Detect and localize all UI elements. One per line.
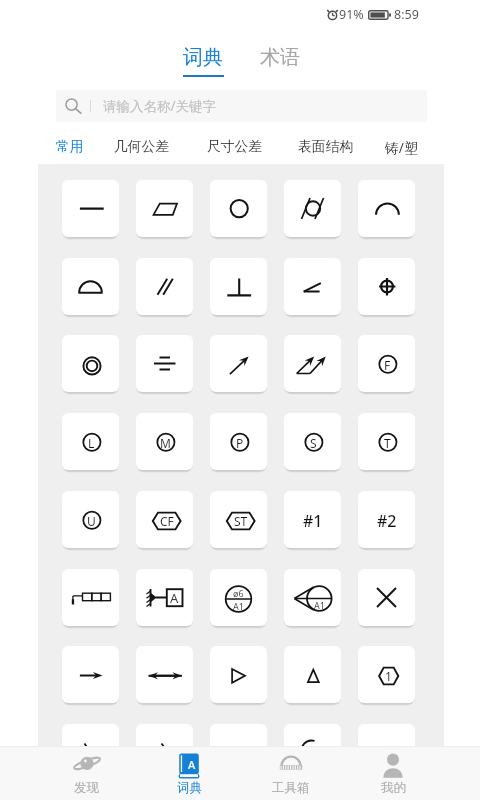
button[interactable]: Symbol 38 — [210, 724, 267, 781]
staticText: 术语 — [260, 45, 300, 70]
staticText: M — [160, 435, 171, 451]
staticText: CF — [160, 513, 174, 529]
button[interactable]: Cylindricity — [284, 180, 341, 237]
button[interactable]: Symmetry — [136, 335, 193, 392]
staticText: 请输入名称/关键字 — [103, 97, 217, 115]
staticText: 91% — [339, 6, 364, 23]
button[interactable]: Circularity — [210, 180, 267, 237]
button[interactable]: Symbol 36 — [62, 724, 119, 781]
staticText: A — [170, 589, 179, 607]
staticText: 1 — [385, 668, 392, 684]
staticText: T — [384, 435, 391, 451]
staticText: A1 — [233, 600, 244, 612]
staticText: P — [236, 435, 244, 451]
button[interactable]: Datum target point — [284, 569, 341, 626]
button[interactable]: Perpendicularity — [210, 258, 267, 315]
staticText: 我的 — [381, 780, 406, 796]
staticText: U — [87, 513, 96, 529]
button[interactable]: 词典 — [173, 42, 233, 80]
button[interactable]: Regardless of feature size — [284, 413, 341, 470]
staticText: S — [310, 435, 317, 451]
button[interactable]: Unequally disposed — [62, 491, 119, 548]
button[interactable]: Position — [358, 258, 415, 315]
staticText: L — [88, 435, 95, 451]
staticText: 词典 — [177, 780, 202, 796]
button[interactable]: Statistical tolerance — [210, 491, 267, 548]
staticText: 常用 — [56, 138, 84, 155]
button[interactable]: 工具箱 — [240, 747, 342, 800]
button[interactable]: 几何公差 — [109, 133, 175, 160]
staticText: #2 — [377, 510, 397, 532]
button[interactable]: Datum target one — [284, 491, 341, 548]
button[interactable]: 请输入名称/关键字 — [56, 90, 427, 122]
button[interactable]: Common zone — [136, 491, 193, 548]
staticText: #1 — [303, 510, 323, 532]
staticText: 尺寸公差 — [207, 138, 263, 155]
staticText: F — [384, 357, 391, 373]
button[interactable]: Number one — [358, 646, 415, 703]
staticText: 表面结构 — [298, 138, 354, 155]
button[interactable]: Direction arrow — [62, 646, 119, 703]
button[interactable]: Maximum material condition — [136, 413, 193, 470]
button[interactable]: Symbol 37 — [136, 724, 193, 781]
button[interactable]: Surface profile — [62, 258, 119, 315]
button[interactable]: Open arrow — [210, 646, 267, 703]
button[interactable]: Flatness — [136, 180, 193, 237]
button[interactable]: Triangle — [284, 646, 341, 703]
button[interactable]: Symbol 39 — [284, 724, 341, 781]
button[interactable]: Least material condition — [62, 413, 119, 470]
button[interactable]: Concentricity — [62, 335, 119, 392]
button[interactable]: Projected tolerance zone — [210, 413, 267, 470]
button[interactable]: 尺寸公差 — [202, 133, 268, 160]
button[interactable]: Angularity — [284, 258, 341, 315]
button[interactable]: Straightness — [62, 180, 119, 237]
button[interactable]: Parallelism — [136, 258, 193, 315]
button[interactable]: Datum target two — [358, 491, 415, 548]
staticText: 发现 — [74, 780, 99, 796]
button[interactable]: Datum feature A — [136, 569, 193, 626]
button[interactable]: Circular runout — [210, 335, 267, 392]
button[interactable]: 铸/塑 — [380, 133, 423, 162]
staticText: 几何公差 — [114, 138, 170, 155]
staticText: 工具箱 — [272, 780, 310, 796]
button[interactable]: Feature control frame — [62, 569, 119, 626]
staticText: 8:59 — [394, 6, 419, 23]
button[interactable]: Double arrow — [136, 646, 193, 703]
button[interactable]: Free state — [358, 335, 415, 392]
button[interactable]: Datum target cross — [358, 569, 415, 626]
button[interactable]: 我的 — [342, 747, 444, 800]
button[interactable]: Tangent plane — [358, 413, 415, 470]
button[interactable]: 术语 — [250, 42, 310, 80]
button[interactable]: 发现 — [35, 747, 138, 800]
button[interactable]: Total runout — [284, 335, 341, 392]
staticText: ø6 — [233, 587, 244, 599]
staticText: ST — [234, 513, 248, 529]
button[interactable]: A — [138, 747, 240, 800]
button[interactable]: 常用 — [51, 133, 89, 160]
staticText: 词典 — [183, 45, 223, 70]
button[interactable]: Datum target area — [210, 569, 267, 626]
button[interactable]: Line profile — [358, 180, 415, 237]
staticText: A — [188, 757, 196, 772]
staticText: 铸/塑 — [385, 138, 418, 157]
staticText: A1 — [314, 599, 325, 611]
button[interactable]: Symbol 40 — [358, 724, 415, 781]
button[interactable]: 表面结构 — [293, 133, 359, 160]
